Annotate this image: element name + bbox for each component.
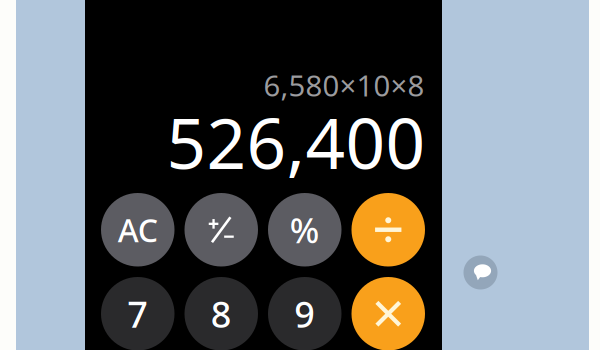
button[interactable]: Multiply bbox=[351, 277, 425, 350]
staticText: AC bbox=[118, 208, 158, 251]
staticText: % bbox=[290, 207, 320, 253]
button[interactable]: Plus minus bbox=[184, 193, 258, 266]
staticText: 9 bbox=[294, 290, 315, 338]
staticText: 7 bbox=[127, 290, 148, 338]
button[interactable]: Messages bbox=[463, 255, 497, 290]
staticText: 6,580×10×8 bbox=[263, 65, 424, 104]
button[interactable]: AC bbox=[101, 193, 174, 266]
staticText: 526,400 bbox=[166, 96, 425, 188]
button[interactable]: Divide bbox=[351, 193, 425, 266]
button[interactable]: % bbox=[268, 193, 341, 266]
button[interactable]: 8 bbox=[184, 277, 258, 350]
button[interactable]: 9 bbox=[268, 277, 341, 350]
button[interactable]: 7 bbox=[101, 277, 174, 350]
staticText: 8 bbox=[211, 290, 232, 338]
